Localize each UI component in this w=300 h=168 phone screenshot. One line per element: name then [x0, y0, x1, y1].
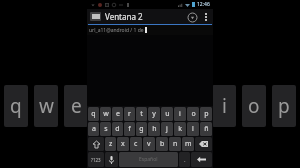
staticText: Español: [139, 156, 158, 163]
button[interactable]: i: [212, 85, 236, 127]
staticText: z: [109, 139, 113, 149]
staticText: i: [179, 109, 181, 119]
button[interactable]: a: [88, 122, 99, 136]
staticText: ?123: [91, 157, 101, 163]
staticText: q: [10, 93, 22, 119]
staticText: e: [116, 109, 120, 119]
staticText: Ventana 2: [105, 11, 186, 22]
staticText: p: [278, 93, 290, 119]
button[interactable]: r: [124, 107, 135, 121]
button[interactable]: w: [100, 107, 111, 121]
button[interactable]: p: [200, 107, 212, 121]
staticText: n: [173, 139, 178, 149]
button[interactable]: Backspace: [195, 137, 212, 151]
button[interactable]: Reload: [186, 11, 198, 23]
staticText: k: [178, 124, 182, 134]
button[interactable]: i: [174, 107, 186, 121]
staticText: w: [39, 93, 54, 119]
button[interactable]: More options: [201, 10, 210, 23]
staticText: p: [204, 109, 209, 119]
button[interactable]: e: [64, 85, 88, 127]
staticText: m: [185, 139, 192, 149]
staticText: g: [139, 124, 144, 134]
staticText: a: [92, 124, 96, 134]
button[interactable]: Tabs: [90, 12, 101, 21]
staticText: x: [121, 139, 125, 149]
button[interactable]: j: [161, 122, 173, 136]
button[interactable]: ñ: [200, 122, 212, 136]
staticText: j: [166, 124, 168, 134]
button[interactable]: Español: [119, 152, 178, 167]
button[interactable]: l: [187, 122, 199, 136]
staticText: url_a11@android / 1 de: [89, 27, 144, 34]
button[interactable]: o: [242, 85, 266, 127]
button[interactable]: z: [105, 137, 116, 151]
staticText: u: [165, 109, 170, 119]
button[interactable]: y: [148, 107, 160, 121]
staticText: c: [134, 139, 138, 149]
button[interactable]: Voice input: [105, 152, 118, 167]
staticText: s: [104, 124, 108, 134]
button[interactable]: f: [124, 122, 135, 136]
staticText: b: [160, 139, 165, 149]
button[interactable]: url_a11@android / 1 de: [89, 25, 213, 35]
staticText: w: [103, 109, 109, 119]
staticText: l: [192, 124, 194, 134]
button[interactable]: v: [143, 137, 155, 151]
staticText: v: [147, 139, 151, 149]
button[interactable]: u: [161, 107, 173, 121]
staticText: 12:46: [197, 1, 210, 8]
button[interactable]: q: [4, 85, 28, 127]
staticText: t: [140, 109, 143, 119]
button[interactable]: g: [136, 122, 147, 136]
staticText: h: [152, 124, 157, 134]
button[interactable]: h: [148, 122, 160, 136]
button[interactable]: q: [88, 107, 99, 121]
button[interactable]: x: [117, 137, 129, 151]
button[interactable]: e: [112, 107, 123, 121]
staticText: i: [222, 93, 227, 119]
staticText: e: [71, 93, 82, 119]
button[interactable]: k: [174, 122, 186, 136]
button[interactable]: d: [112, 122, 123, 136]
staticText: d: [115, 124, 120, 134]
staticText: o: [191, 109, 196, 119]
button[interactable]: m: [182, 137, 194, 151]
button[interactable]: s: [100, 122, 111, 136]
button[interactable]: n: [169, 137, 181, 151]
button[interactable]: Shift: [88, 137, 104, 151]
button[interactable]: w: [34, 85, 58, 127]
staticText: r: [128, 109, 131, 119]
button[interactable]: c: [130, 137, 142, 151]
staticText: f: [128, 124, 131, 134]
button[interactable]: .: [179, 152, 190, 167]
staticText: ñ: [204, 124, 209, 134]
button[interactable]: Enter: [191, 152, 212, 167]
button[interactable]: ?123: [88, 152, 104, 167]
staticText: y: [152, 109, 156, 119]
button[interactable]: p: [272, 85, 296, 127]
staticText: q: [91, 109, 96, 119]
button[interactable]: t: [136, 107, 147, 121]
button[interactable]: b: [156, 137, 168, 151]
button[interactable]: o: [187, 107, 199, 121]
staticText: o: [248, 93, 260, 119]
staticText: .: [184, 156, 186, 164]
